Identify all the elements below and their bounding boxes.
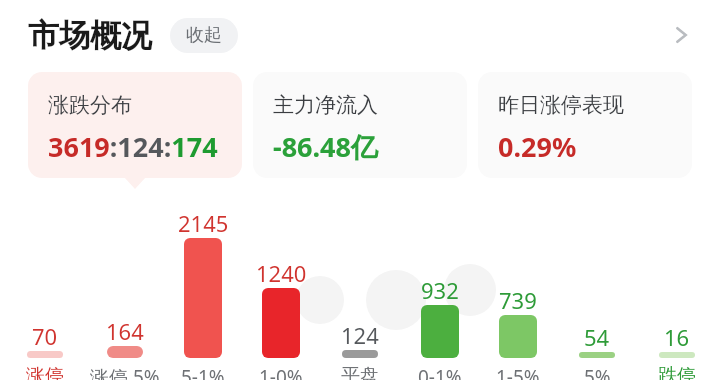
staticText: 3619:124:1741 [48,128,230,164]
staticText: 5% [584,364,611,380]
staticText: 124 [341,320,379,350]
staticText: 收起 [186,24,222,47]
staticText: 1-0% [259,364,303,380]
button[interactable]: 昨日涨停表现 [478,72,692,178]
staticText: 5-1% [181,364,225,380]
staticText: 0.29% [498,128,577,164]
staticText: 16 [664,322,690,352]
staticText: 164 [106,316,144,346]
staticText: -86.48亿 [273,128,379,164]
button[interactable]: 涨跌分布 [28,72,242,178]
staticText: 1-5% [496,364,540,380]
staticText: 涨停 5% [90,364,160,380]
staticText: 932 [421,275,459,305]
staticText: 70 [32,321,58,351]
staticText: 54 [584,322,610,352]
button[interactable]: 收起 [170,18,238,53]
staticText: 昨日涨停表现 [498,92,624,118]
staticText: 涨跌分布 [48,92,132,118]
staticText: 跌停 [658,364,696,380]
staticText: 市场概况 [28,16,152,55]
button[interactable]: 主力净流入 [253,72,467,178]
staticText: 平盘 [341,364,379,380]
staticText: 主力净流入 [273,92,378,118]
staticText: 1240 [256,258,307,288]
button[interactable]: 更多 [654,8,708,62]
staticText: 0-1% [418,364,462,380]
staticText: 涨停 [26,364,64,380]
staticText: 2145 [178,208,229,238]
staticText: 739 [499,285,537,315]
